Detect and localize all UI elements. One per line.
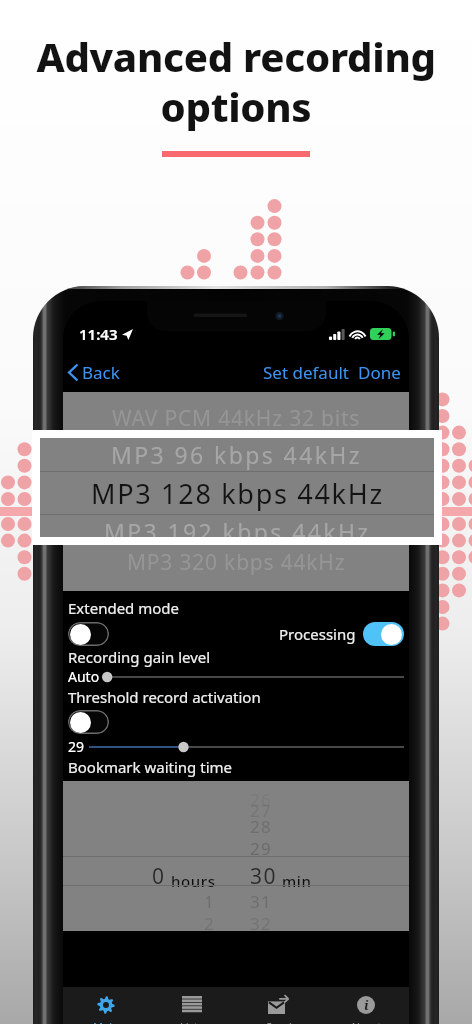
staticText: Send xyxy=(266,1019,292,1024)
staticText: Processing xyxy=(279,624,356,644)
staticText: Auto xyxy=(68,667,100,686)
staticText: Done xyxy=(358,361,401,384)
staticText: Lists xyxy=(180,1019,204,1024)
button[interactable]: About xyxy=(322,987,409,1024)
staticText: Bookmark waiting time xyxy=(68,757,232,777)
staticText: Extended mode xyxy=(68,598,180,618)
staticText: Recording gain level xyxy=(68,647,211,667)
staticText: 27 xyxy=(250,799,273,822)
staticText: Advanced recording options xyxy=(36,29,436,134)
staticText: 30 xyxy=(250,862,277,891)
staticText: 29 xyxy=(68,737,85,756)
staticText: Threshold record activation xyxy=(68,687,261,707)
staticText: Back xyxy=(82,361,120,384)
button[interactable]: MP3 96 kbps 44kHz xyxy=(40,438,434,471)
staticText: MP3 96 kbps 44kHz xyxy=(133,440,339,469)
button[interactable] xyxy=(68,622,109,646)
staticText: 26 xyxy=(250,788,273,811)
staticText: WAV PCM 44kHz 32 bits xyxy=(112,404,361,433)
button[interactable]: MP3 96 kbps 44kHz xyxy=(63,436,409,472)
button[interactable] xyxy=(68,710,109,734)
staticText: About xyxy=(350,1019,382,1024)
staticText: min xyxy=(282,871,312,891)
staticText: i xyxy=(364,996,369,1014)
button[interactable]: MP3 128 kbps 44kHz xyxy=(63,472,409,508)
staticText: 32 xyxy=(250,912,273,935)
staticText: 28 xyxy=(250,815,273,838)
staticText: MP3 192 kbps 44kHz xyxy=(104,516,371,537)
button[interactable]: MP3 192 kbps 44kHz xyxy=(40,515,434,537)
button[interactable]: Lists xyxy=(149,987,235,1024)
staticText: 0 xyxy=(152,862,166,891)
button[interactable]: Set default xyxy=(263,361,349,384)
staticText: 11:43 xyxy=(79,324,118,344)
button[interactable]: Send xyxy=(235,987,322,1024)
button[interactable]: WAV PCM 44kHz 32 bits xyxy=(63,400,409,436)
staticText: MP3 192 kbps 44kHz xyxy=(127,512,346,541)
button[interactable]: MP3 320 kbps 44kHz xyxy=(63,544,409,580)
staticText: Set default xyxy=(263,361,349,384)
staticText: 2 xyxy=(204,912,216,935)
staticText: MP3 320 kbps 44kHz xyxy=(127,548,346,577)
button[interactable]: MP3 192 kbps 44kHz xyxy=(63,508,409,544)
button[interactable]: Main settings xyxy=(63,987,149,1024)
staticText: MP3 128 kbps 44kHz xyxy=(91,475,384,512)
staticText: hours xyxy=(171,871,216,891)
button[interactable] xyxy=(363,622,404,646)
staticText: MP3 128 kbps 44kHz xyxy=(122,475,351,505)
staticText: 31 xyxy=(250,890,273,913)
staticText: 29 xyxy=(250,837,273,860)
staticText: Main xyxy=(93,1019,119,1024)
button[interactable]: MP3 128 kbps 44kHz xyxy=(40,472,434,514)
button[interactable]: Done xyxy=(358,361,401,384)
staticText: 1 xyxy=(204,890,216,913)
staticText: MP3 96 kbps 44kHz xyxy=(111,439,363,470)
button[interactable]: Back xyxy=(68,361,120,384)
